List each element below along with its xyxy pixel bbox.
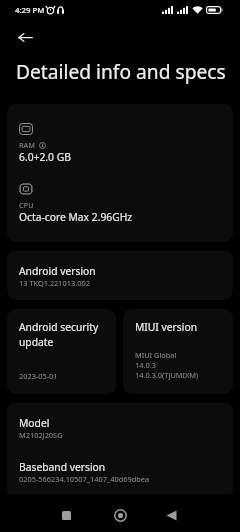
- button[interactable]: Back: [154, 498, 189, 532]
- button[interactable]: Back: [13, 25, 37, 49]
- staticText: Detailed info and specs: [16, 58, 226, 84]
- staticText: 14.0.3: [135, 360, 156, 370]
- button[interactable]: Recent apps: [49, 498, 84, 532]
- staticText: Baseband version: [19, 460, 106, 474]
- staticText: MIUI version: [135, 320, 197, 334]
- button[interactable]: Model: [7, 403, 233, 498]
- button[interactable]: Android security: [7, 309, 116, 394]
- staticText: 13 TKQ1.221013.002: [19, 278, 90, 288]
- staticText: RAM: [19, 140, 36, 150]
- staticText: Octa-core Max 2.96GHz: [19, 210, 133, 224]
- staticText: Android version: [19, 264, 96, 278]
- staticText: 14.0.3.0(TJUMIXM): [135, 370, 199, 380]
- button[interactable]: Android version: [7, 251, 233, 300]
- staticText: Android security: [19, 320, 99, 334]
- staticText: M2102J20SG: [19, 430, 63, 440]
- staticText: 6.0+2.0 GB: [19, 150, 71, 164]
- staticText: Model: [19, 416, 50, 430]
- staticText: 0205-566234.10507_1407_40d69dbea: [19, 474, 150, 484]
- button[interactable]: Home: [103, 498, 138, 532]
- staticText: 4:29 PM: [15, 5, 45, 16]
- staticText: update: [19, 335, 54, 349]
- staticText: MIUI Global: [135, 350, 177, 360]
- button[interactable]: RAM: [7, 104, 233, 242]
- button[interactable]: MIUI version: [123, 309, 233, 394]
- staticText: CPU: [19, 200, 34, 210]
- staticText: 2023-05-01: [19, 371, 58, 381]
